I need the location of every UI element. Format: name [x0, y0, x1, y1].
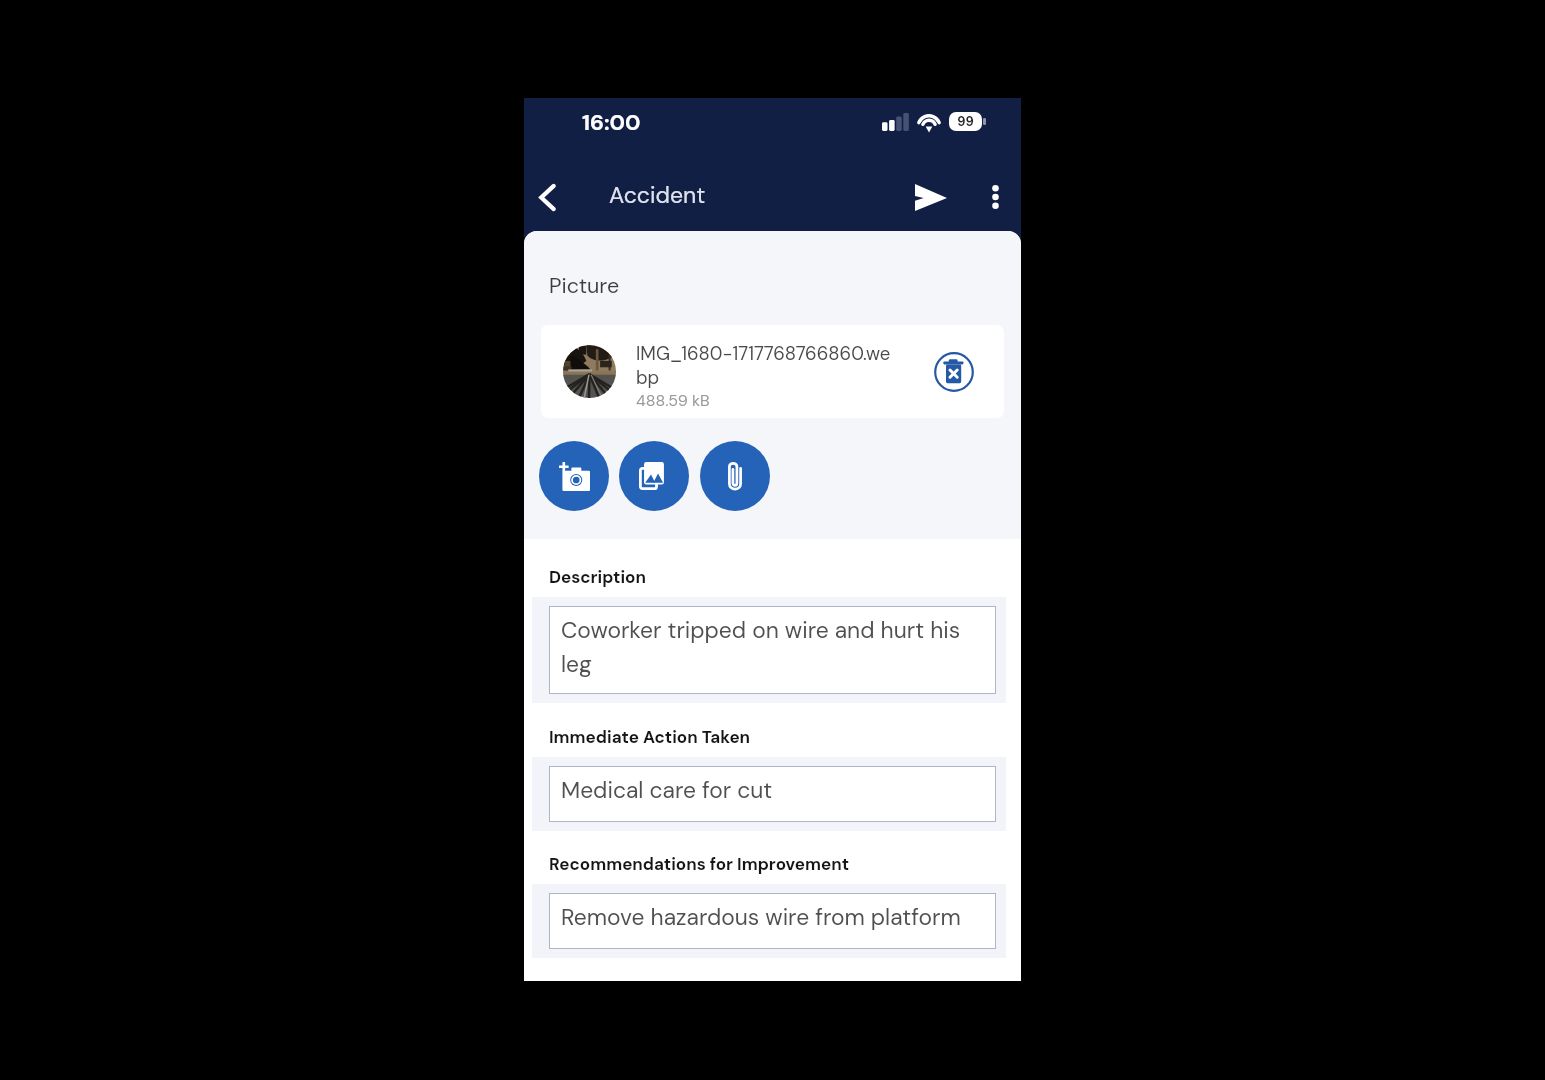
staticText: Remove hazardous wire from platform [561, 902, 961, 932]
staticText: 99 [957, 113, 974, 130]
button[interactable]: IMG_1680-1717768766860.webp [541, 325, 1004, 418]
staticText: Description [549, 566, 646, 588]
staticText: IMG_1680-1717768766860.webp [636, 342, 901, 390]
button[interactable]: Delete file [931, 349, 976, 394]
staticText: Medical care for cut [561, 775, 773, 805]
staticText: Immediate Action Taken [549, 726, 751, 748]
button[interactable]: More options [977, 178, 1014, 215]
button[interactable]: Back [528, 178, 566, 216]
button[interactable]: Take photo [539, 441, 609, 511]
button[interactable]: Coworker tripped on wire and hurt his le… [549, 606, 996, 694]
button[interactable]: Send [907, 173, 955, 221]
staticText: Coworker tripped on wire and hurt his le… [561, 615, 973, 679]
staticText: Accident [609, 180, 706, 210]
button[interactable]: Attach file [700, 441, 770, 511]
staticText: 488.59 kB [636, 390, 710, 411]
button[interactable]: Remove hazardous wire from platform [549, 893, 996, 949]
staticText: 16:00 [582, 108, 641, 137]
button[interactable]: Pick from gallery [619, 441, 689, 511]
staticText: Recommendations for Improvement [549, 853, 850, 875]
staticText: Picture [549, 272, 620, 300]
button[interactable]: Medical care for cut [549, 766, 996, 822]
